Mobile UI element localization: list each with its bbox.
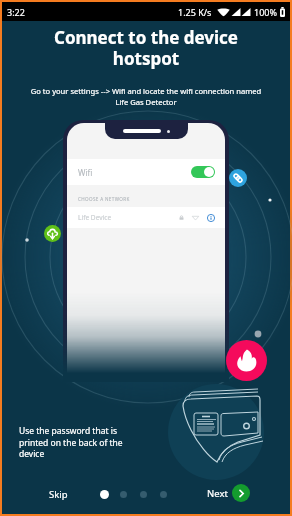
staticText: Life Device (78, 213, 112, 222)
staticText: CHOOSE A NETWORK (78, 196, 130, 202)
staticText: Wifi (78, 167, 93, 178)
staticText: 100% (254, 6, 277, 18)
button[interactable]: Next (202, 480, 255, 506)
staticText: 3:22 (7, 6, 25, 18)
staticText: Connect to the device hotspot (2, 26, 290, 70)
button[interactable]: Gas flame (226, 340, 267, 381)
staticText: Go to your settings --> Wifi and locate … (2, 86, 290, 107)
staticText: Use the password that is printed on the … (19, 425, 123, 460)
button[interactable]: Cloud upload (44, 225, 61, 242)
button[interactable]: Skip (41, 482, 76, 507)
staticText: Skip (49, 488, 68, 501)
button[interactable]: Link (229, 169, 247, 187)
staticText: 1.25 K/s (178, 6, 212, 18)
staticText: Next (207, 487, 228, 500)
